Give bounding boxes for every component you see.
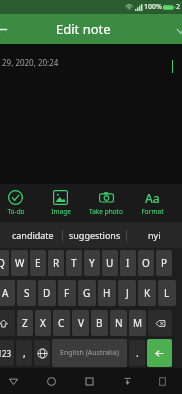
staticText: Y (89, 256, 95, 270)
button[interactable]: English (Australia) (52, 339, 127, 367)
staticText: ?123 (0, 348, 12, 359)
staticText: To-do (7, 207, 25, 216)
staticText: C (58, 316, 65, 330)
button[interactable]: Backspace (148, 310, 172, 336)
staticText: E (35, 256, 41, 270)
button[interactable]: . (129, 340, 145, 366)
button[interactable]: To-do (0, 184, 38, 222)
staticText: X (40, 316, 46, 330)
staticText: J (126, 286, 129, 300)
button[interactable]: N (110, 310, 127, 336)
staticText: suggestions (69, 229, 121, 241)
button[interactable]: L (158, 280, 176, 306)
button[interactable]: T (66, 250, 82, 276)
button[interactable]: D (38, 280, 56, 306)
staticText: D (43, 286, 51, 300)
staticText: candidate (12, 229, 54, 241)
staticText: P (161, 256, 168, 270)
button[interactable]: , (16, 340, 32, 366)
button[interactable]: nyi (127, 222, 182, 248)
staticText: L (164, 286, 170, 300)
staticText: English (Australia) (60, 348, 119, 358)
button[interactable]: G (78, 280, 96, 306)
staticText: B (96, 316, 103, 330)
button[interactable]: B (91, 310, 108, 336)
staticText: F (64, 286, 70, 300)
staticText: O (142, 256, 150, 270)
staticText: Aa (145, 190, 160, 205)
button[interactable]: Take photo (83, 184, 129, 222)
button[interactable]: candidate (4, 222, 62, 248)
staticText: Z (22, 316, 28, 330)
button[interactable]: Z (17, 310, 33, 336)
button[interactable]: M (129, 310, 146, 336)
staticText: . (136, 346, 139, 360)
staticText: , (23, 346, 26, 360)
button[interactable]: S (17, 280, 36, 306)
staticText: G (83, 286, 91, 300)
button[interactable]: J (118, 280, 136, 306)
staticText: N (115, 316, 123, 330)
button[interactable]: P (156, 250, 172, 276)
button[interactable]: Image (38, 184, 83, 222)
button[interactable]: A (0, 280, 15, 306)
button[interactable]: V (72, 310, 89, 336)
staticText: V (78, 316, 84, 330)
button[interactable]: W (11, 250, 28, 276)
button[interactable]: Aa (129, 184, 175, 222)
staticText: R (53, 256, 60, 270)
button[interactable]: Shift (0, 310, 15, 336)
staticText: Q (0, 256, 5, 270)
button[interactable]: X (35, 310, 51, 336)
button[interactable]: C (53, 310, 70, 336)
staticText: Format (141, 207, 164, 216)
staticText: U (106, 256, 114, 270)
staticText: S (24, 286, 30, 300)
button[interactable]: Y (84, 250, 100, 276)
staticText: 29, 2020, 20:24 (2, 57, 59, 68)
staticText: 100% (144, 2, 162, 12)
button[interactable]: suggestions (63, 222, 126, 248)
button[interactable]: Q (0, 250, 9, 276)
button[interactable]: Screenshot (151, 370, 173, 392)
staticText: K (144, 286, 151, 300)
button[interactable]: Back (0, 15, 14, 43)
button[interactable]: K (138, 280, 156, 306)
staticText: H (103, 286, 111, 300)
staticText: Edit note (56, 20, 111, 38)
button[interactable]: E (30, 250, 46, 276)
staticText: 2 (176, 2, 181, 12)
staticText: A (2, 286, 9, 300)
button[interactable]: Enter (147, 339, 172, 367)
staticText: M (133, 316, 143, 330)
button[interactable]: Hide keyboard (116, 370, 138, 392)
button[interactable]: Save note (168, 15, 182, 43)
button[interactable]: F (58, 280, 76, 306)
staticText: Take photo (89, 207, 123, 216)
button[interactable]: Recents (78, 370, 100, 392)
button[interactable]: Home (40, 370, 62, 392)
button[interactable]: Back (2, 370, 24, 392)
staticText: W (15, 256, 25, 270)
button[interactable]: Change language (34, 340, 50, 366)
button[interactable]: R (48, 250, 64, 276)
button[interactable]: I (120, 250, 136, 276)
staticText: T (71, 256, 77, 270)
button[interactable]: ?123 (0, 340, 14, 366)
staticText: nyi (148, 229, 161, 241)
button[interactable]: U (102, 250, 118, 276)
button[interactable]: H (98, 280, 116, 306)
staticText: Image (51, 207, 71, 216)
button[interactable]: O (138, 250, 154, 276)
staticText: I (126, 256, 130, 270)
